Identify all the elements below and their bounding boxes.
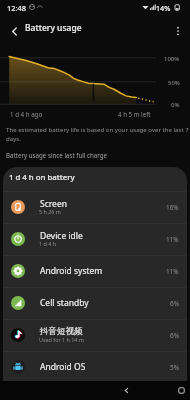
staticText: The estimated battery life is based on y… [6,125,189,143]
button[interactable]: 抖音短视频 [3,319,187,351]
staticText: 4 h 5 m left [118,110,151,118]
button[interactable]: Back [31,381,190,400]
staticText: Cell standby [40,297,89,309]
staticText: 抖音短视频 [40,326,83,337]
staticText: 50% [168,79,180,87]
staticText: Battery usage [25,22,82,34]
staticText: 100% [164,55,180,63]
button[interactable]: Device idle [3,223,187,255]
staticText: 1 d 4 h ago [10,110,43,118]
staticText: 5 h 26 m [39,208,61,215]
staticText: 6% [170,331,179,340]
staticText: Screen [40,198,67,210]
button[interactable]: Cell standby [3,287,187,319]
staticText: 11% [166,267,179,276]
staticText: 1 d 4 h [39,240,57,247]
button[interactable]: Android system [3,255,187,287]
staticText: 16% [166,203,179,212]
staticText: Device idle [40,230,83,242]
staticText: Battery usage since last full charge [6,151,108,159]
staticText: 0% [171,101,180,109]
staticText: 1 d 4 h on battery [9,172,75,183]
staticText: 5% [170,363,179,372]
staticText: 11% [166,235,179,244]
staticText: 6% [170,299,179,308]
button[interactable]: Home [86,381,190,400]
button[interactable]: Recent apps [137,381,190,400]
button[interactable]: More options [168,21,188,41]
button[interactable]: Navigate up [4,21,24,41]
staticText: 12:48 [7,3,26,13]
staticText: Android system [40,265,103,277]
staticText: Used for 1 h 14 m [39,336,84,343]
staticText: 14% [156,3,171,13]
staticText: Android OS [40,361,86,373]
button[interactable]: Android OS [3,351,187,383]
button[interactable]: Screen [3,191,187,223]
